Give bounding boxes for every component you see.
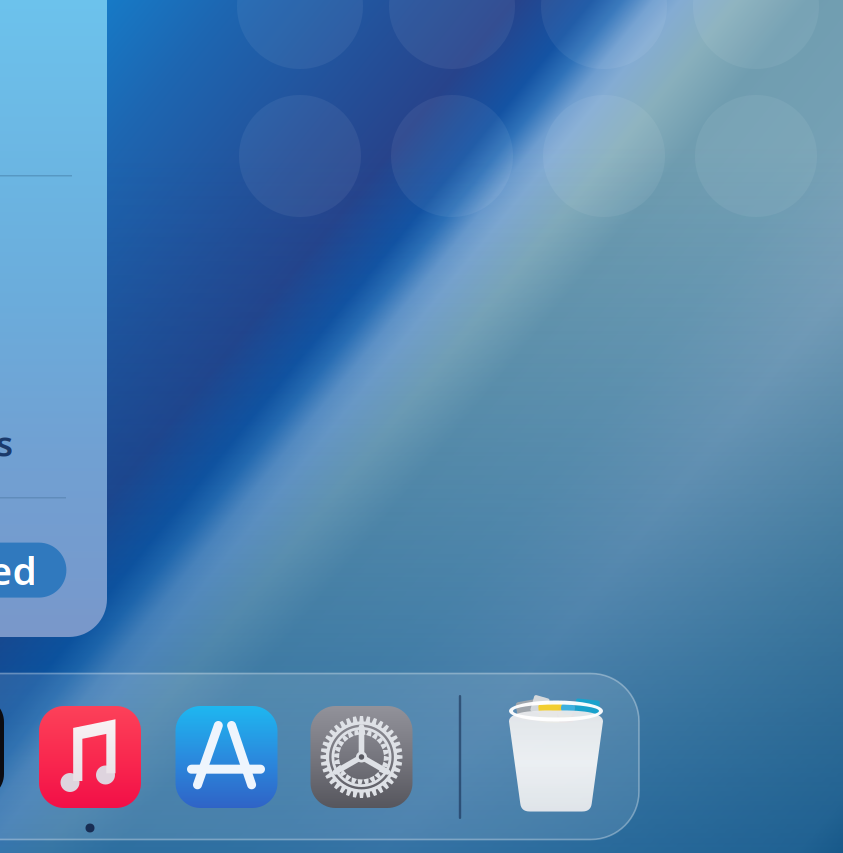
button[interactable]: Music bbox=[39, 706, 141, 808]
button[interactable]: eed bbox=[0, 543, 66, 598]
button[interactable]: App bbox=[0, 697, 4, 799]
button[interactable]: App Store bbox=[175, 706, 277, 808]
staticText: s bbox=[0, 420, 13, 466]
button[interactable]: Trash bbox=[505, 700, 607, 812]
button[interactable]: System Settings bbox=[310, 706, 412, 808]
staticText: eed bbox=[0, 544, 36, 596]
